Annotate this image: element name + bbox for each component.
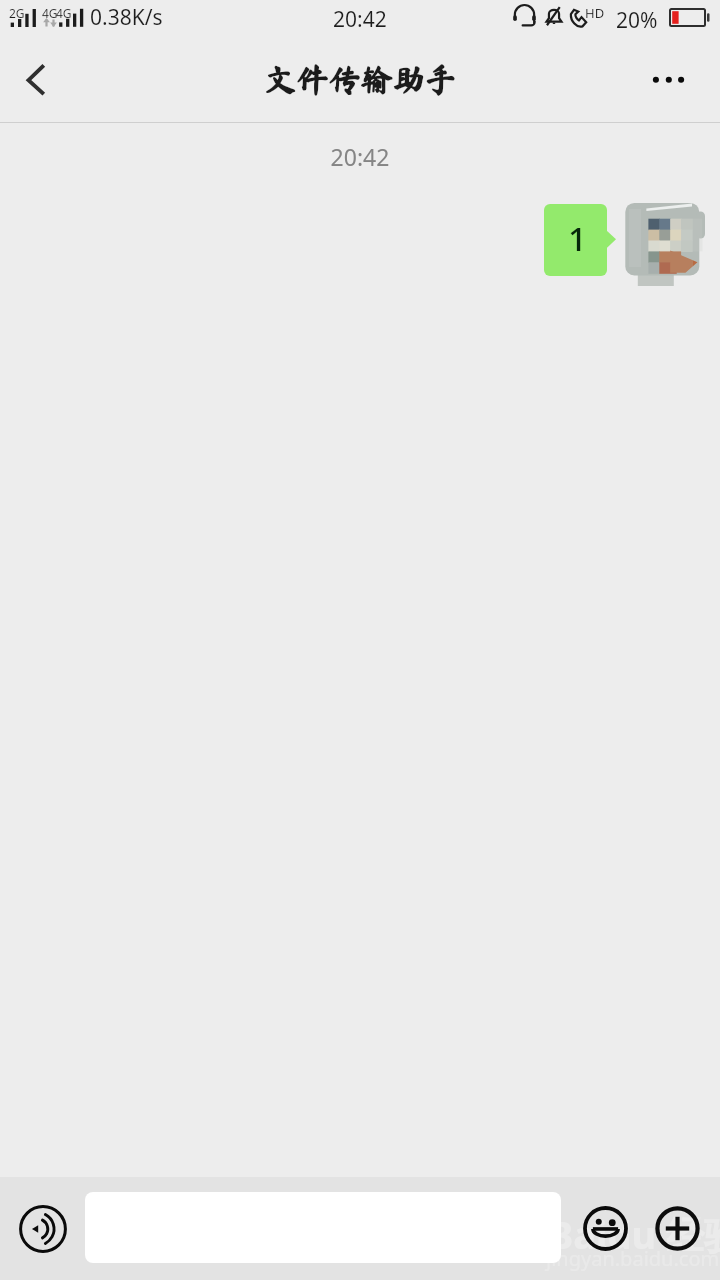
staticText: 0.38K/s xyxy=(90,3,163,32)
staticText: 20:42 xyxy=(333,5,387,34)
staticText: Baidu 经验 xyxy=(548,1208,720,1260)
button[interactable]: Avatar xyxy=(618,193,712,293)
staticText: 4G xyxy=(42,5,58,21)
button[interactable]: Emoji xyxy=(583,1206,628,1251)
staticText: 20% xyxy=(616,6,658,35)
staticText: HD xyxy=(585,4,605,22)
staticText: jingyan.baidu.com xyxy=(546,1245,720,1272)
button[interactable]: More options xyxy=(636,37,720,123)
button[interactable]: Back xyxy=(0,37,70,123)
button[interactable]: Voice input xyxy=(19,1205,67,1253)
staticText: 1 xyxy=(568,216,587,261)
staticText: 文件传输助手 xyxy=(264,64,457,96)
button[interactable]: 1 xyxy=(544,204,616,276)
staticText: 2G xyxy=(9,5,25,21)
staticText: 4G xyxy=(56,5,72,21)
staticText: 20:42 xyxy=(0,141,720,172)
button[interactable]: More functions xyxy=(655,1206,700,1251)
